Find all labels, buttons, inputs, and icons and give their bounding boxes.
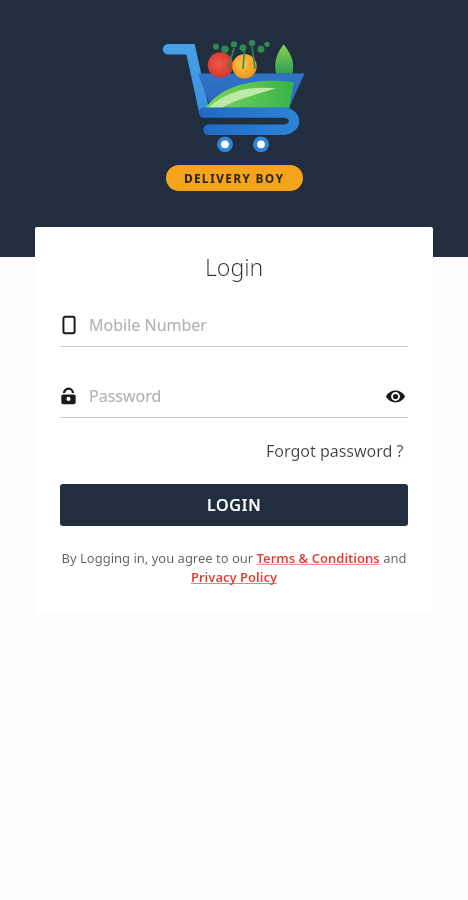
staticText: Forgot password ? (266, 440, 404, 462)
staticText: By Logging in, you agree to our Terms & … (60, 549, 408, 586)
button[interactable]: Show password (382, 383, 408, 409)
button[interactable]: Mobile Number (60, 310, 408, 347)
staticText: DELIVERY BOY (184, 170, 285, 186)
button[interactable]: LOGIN (60, 484, 408, 526)
staticText: Mobile Number (89, 314, 207, 336)
button[interactable]: Forgot password ? (262, 436, 408, 466)
staticText: Password (89, 385, 162, 407)
button[interactable]: By Logging in, you agree to our Terms & … (60, 549, 408, 586)
button[interactable]: Password (60, 381, 408, 418)
staticText: LOGIN (207, 494, 262, 516)
staticText: Login (205, 251, 264, 282)
